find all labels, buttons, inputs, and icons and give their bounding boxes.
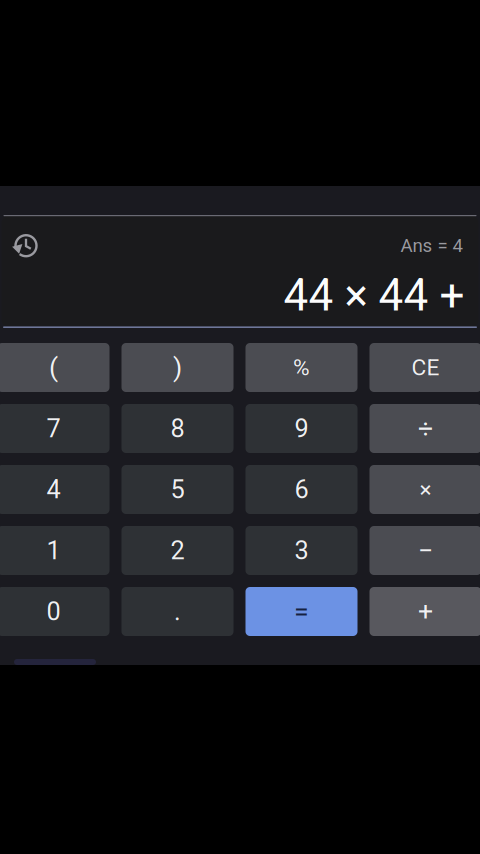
button[interactable]: 8 — [121, 404, 233, 453]
staticText: Ans = 4 — [400, 235, 462, 257]
button[interactable]: + — [369, 587, 480, 636]
button[interactable]: 7 — [0, 404, 109, 453]
button[interactable]: CE — [369, 343, 480, 392]
button[interactable]: 3 — [245, 526, 357, 575]
staticText: ÷ — [418, 413, 433, 444]
button[interactable]: 1 — [0, 526, 109, 575]
button[interactable]: ( — [0, 343, 109, 392]
staticText: − — [418, 535, 433, 566]
staticText: × — [419, 476, 431, 503]
button[interactable]: History — [5, 228, 43, 262]
staticText: CE — [411, 354, 439, 381]
staticText: 2 — [170, 536, 184, 565]
button[interactable]: 0 — [0, 587, 109, 636]
button[interactable]: 6 — [245, 465, 357, 514]
button[interactable]: % — [245, 343, 357, 392]
staticText: 3 — [294, 536, 308, 565]
staticText: 4 — [46, 475, 60, 504]
staticText: 6 — [294, 475, 308, 504]
button[interactable]: 5 — [121, 465, 233, 514]
staticText: 8 — [170, 414, 184, 443]
staticText: 0 — [46, 597, 60, 626]
button[interactable]: − — [369, 526, 480, 575]
staticText: = — [294, 596, 309, 627]
button[interactable]: ) — [121, 343, 233, 392]
staticText: + — [418, 596, 433, 627]
staticText: % — [293, 354, 310, 381]
staticText: 1 — [46, 536, 60, 565]
staticText: 5 — [170, 475, 184, 504]
button[interactable]: 4 — [0, 465, 109, 514]
staticText: 7 — [46, 414, 60, 443]
button[interactable]: . — [121, 587, 233, 636]
staticText: ) — [173, 352, 182, 383]
staticText: ( — [49, 352, 58, 383]
button[interactable]: ÷ — [369, 404, 480, 453]
staticText: 9 — [294, 414, 308, 443]
button[interactable]: = — [245, 587, 357, 636]
staticText: 44 × 44 + — [283, 270, 464, 321]
staticText: . — [174, 597, 181, 626]
button[interactable]: × — [369, 465, 480, 514]
button[interactable]: 2 — [121, 526, 233, 575]
button[interactable]: 9 — [245, 404, 357, 453]
